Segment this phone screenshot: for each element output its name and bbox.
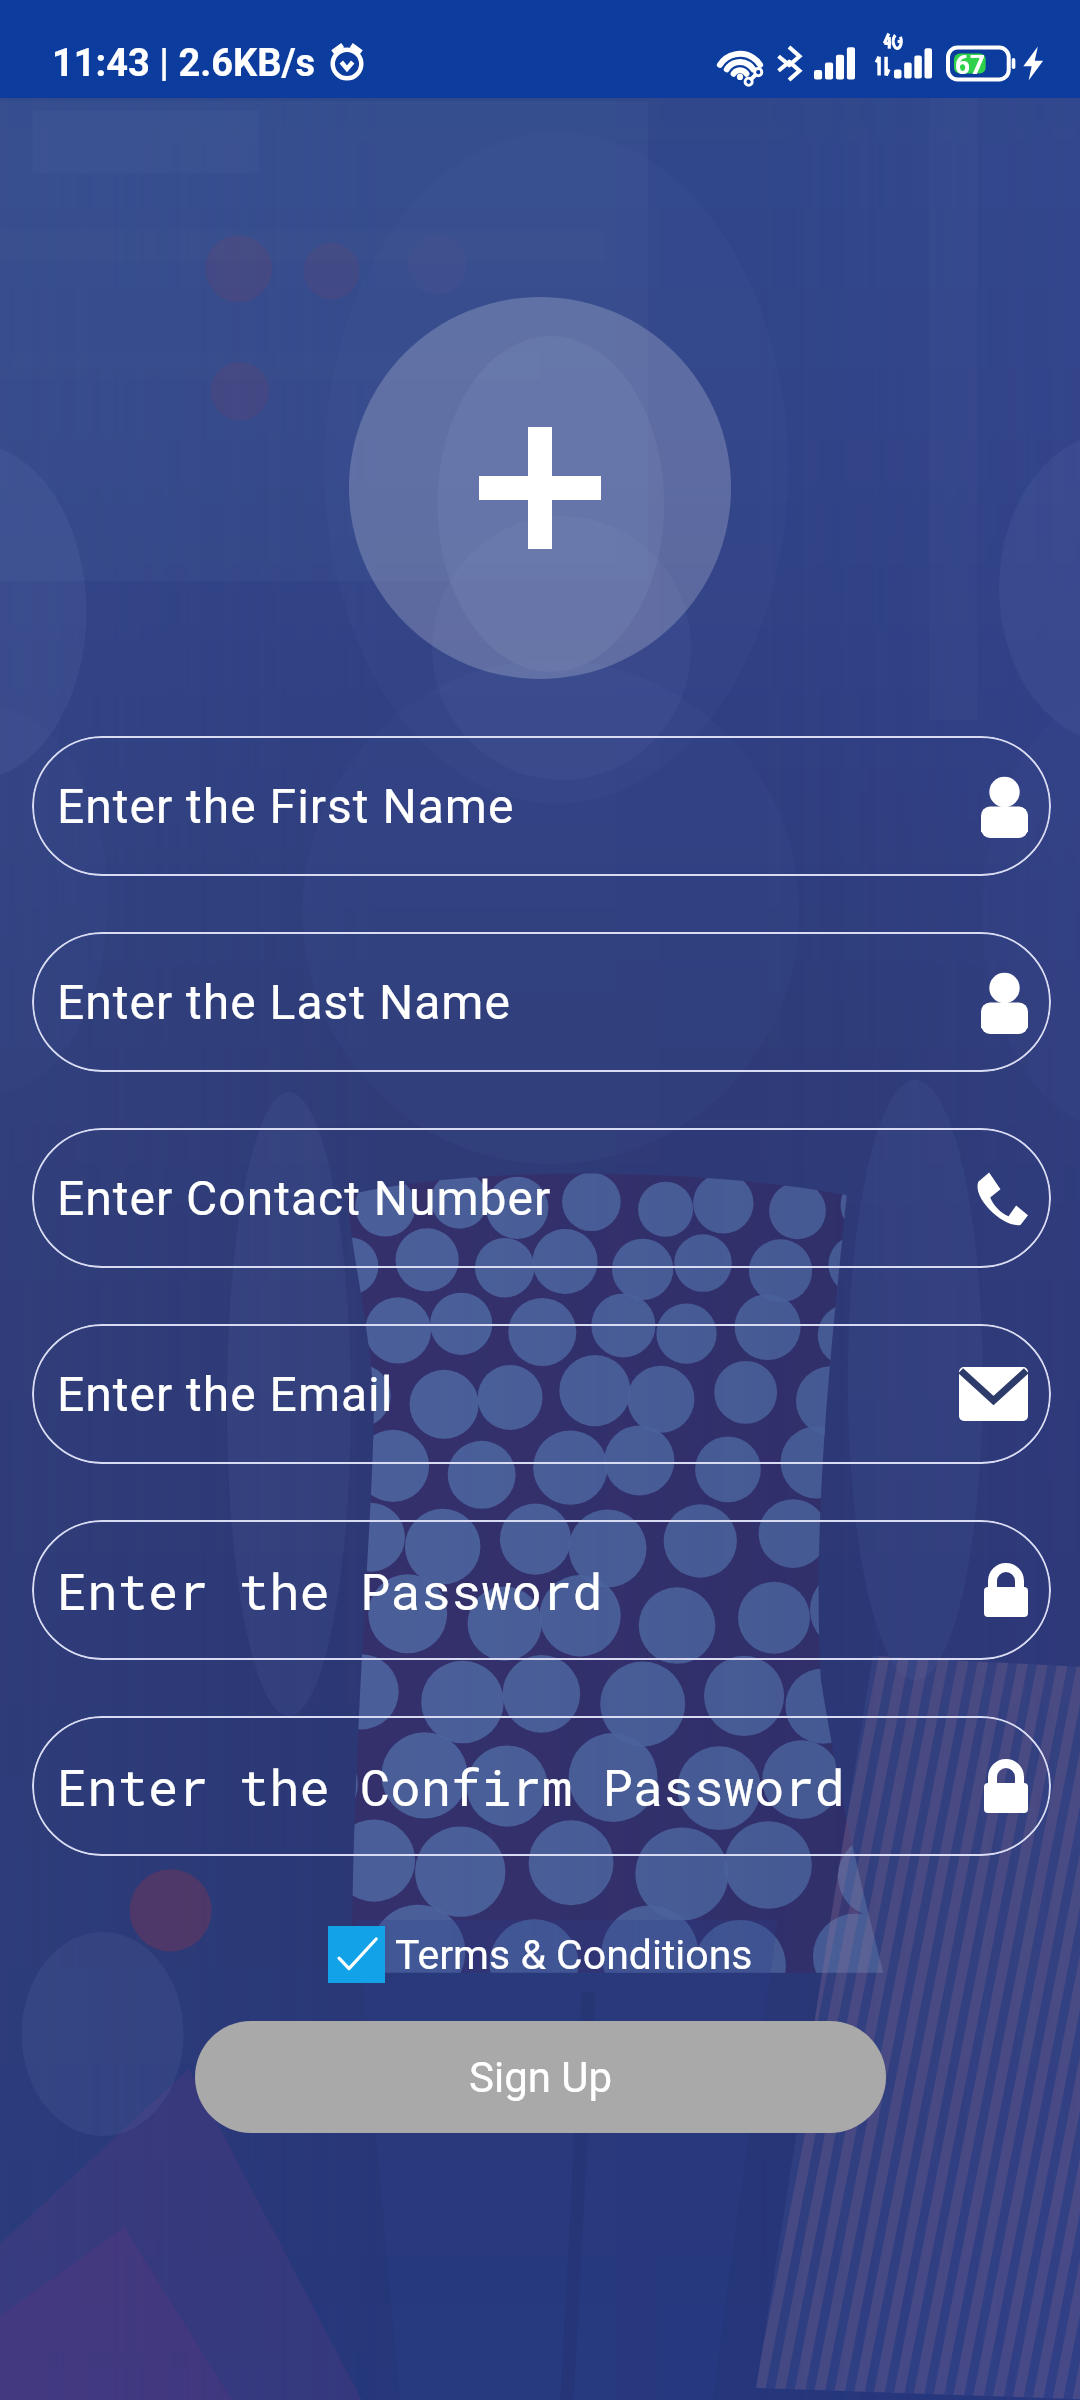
button[interactable]: Enter the Confirm Password <box>32 1716 1051 1856</box>
staticText: Terms & Conditions <box>395 1931 753 1979</box>
button[interactable]: Enter the Email <box>32 1324 1051 1464</box>
staticText: 11:43 | 2.6KB/s <box>52 41 316 86</box>
button[interactable]: Add profile photo <box>349 297 731 679</box>
staticText: Sign Up <box>469 2053 613 2102</box>
staticText: 67 <box>955 50 985 80</box>
button[interactable]: Sign Up <box>195 2021 886 2133</box>
staticText: Enter the First Name <box>57 778 515 834</box>
button[interactable]: Enter Contact Number <box>32 1128 1051 1268</box>
staticText: Enter Contact Number <box>57 1170 552 1226</box>
button[interactable]: Enter the Password <box>32 1520 1051 1660</box>
staticText: Enter the Password <box>57 1557 603 1624</box>
button[interactable]: Enter the Last Name <box>32 932 1051 1072</box>
button[interactable]: Terms & Conditions <box>0 1926 1080 1983</box>
staticText: Enter the Last Name <box>57 974 511 1030</box>
button[interactable]: Enter the First Name <box>32 736 1051 876</box>
staticText: Enter the Confirm Password <box>57 1753 845 1820</box>
staticText: Enter the Email <box>57 1366 394 1422</box>
